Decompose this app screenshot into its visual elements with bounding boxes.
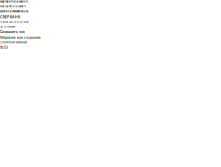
staticText: СБЕР БАНК xyxy=(0,15,20,19)
staticText: Чек по операции xyxy=(0,26,15,28)
staticText: Евгения Вячеславовна М. xyxy=(0,10,29,13)
staticText: Сохранить чек xyxy=(0,30,25,34)
staticText: Маргарита Юрьевна П. xyxy=(0,0,29,3)
staticText: Дополнительная информация xyxy=(0,41,27,44)
staticText: Маргарита Юрьевна П. xyxy=(0,5,27,8)
staticText: 10:53 xyxy=(0,46,8,49)
staticText: Отправить или сохранить xyxy=(0,36,41,39)
staticText: 13 июля 2022 20:47:20 (МСК) xyxy=(0,21,29,23)
